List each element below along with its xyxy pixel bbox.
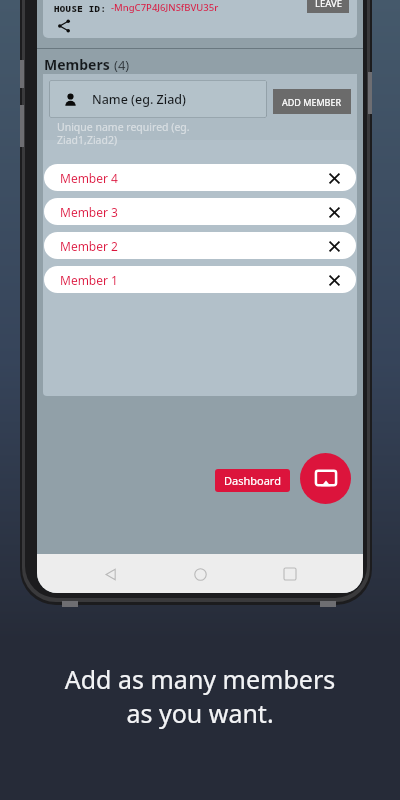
button[interactable]: Back: [93, 557, 127, 591]
button[interactable]: Remove Member 2: [324, 236, 344, 256]
staticText: Add as many members as you want.: [0, 662, 400, 730]
button[interactable]: Open dashboard: [300, 453, 351, 504]
button[interactable]: Remove Member 3: [324, 202, 344, 222]
staticText: Unique name required (eg. Ziad1,Ziad2): [57, 120, 190, 147]
staticText: Member 2: [60, 238, 118, 254]
button[interactable]: ADD MEMBER: [273, 89, 351, 114]
staticText: Dashboard: [224, 473, 281, 488]
button[interactable]: LEAVE: [307, 0, 349, 13]
button[interactable]: Dashboard: [215, 469, 290, 492]
staticText: HOUSE ID:: [54, 2, 107, 14]
staticText: Name (eg. Ziad): [92, 91, 186, 108]
button[interactable]: Member 3: [44, 198, 356, 225]
staticText: Member 3: [60, 204, 118, 220]
button[interactable]: Name (eg. Ziad): [49, 80, 267, 118]
button[interactable]: Home: [183, 557, 217, 591]
button[interactable]: Remove Member 1: [324, 270, 344, 290]
button[interactable]: Member 4: [44, 164, 356, 191]
staticText: LEAVE: [315, 0, 342, 10]
staticText: (4): [114, 56, 130, 74]
staticText: -MngC7P4J6JNSfBVU35r: [111, 1, 219, 14]
button[interactable]: Share: [53, 15, 75, 37]
staticText: Member 1: [60, 272, 118, 288]
button[interactable]: Recents: [273, 557, 307, 591]
staticText: Member 4: [60, 170, 118, 186]
button[interactable]: Member 1: [44, 266, 356, 293]
staticText: Members: [44, 55, 110, 74]
button[interactable]: Member 2: [44, 232, 356, 259]
staticText: ADD MEMBER: [282, 96, 342, 108]
button[interactable]: Remove Member 4: [324, 168, 344, 188]
